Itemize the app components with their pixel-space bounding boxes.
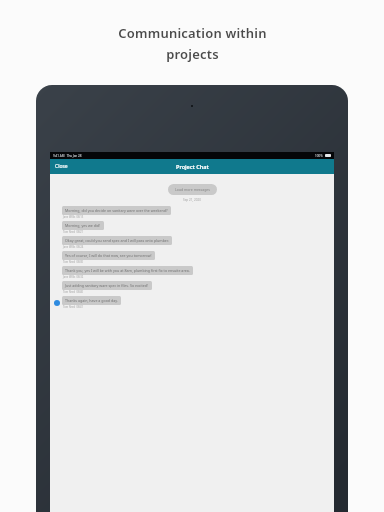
staticText: Okay great, could you send spec and I wi… [65,238,169,243]
staticText: Tom Reed 08:41 [63,305,84,309]
button[interactable]: Thank you, yes I will be with you at 8am… [50,265,334,280]
staticText: Morning, yes we did! [65,223,101,228]
staticText: Load more messages [175,187,210,192]
button[interactable]: Close [50,161,73,172]
button[interactable]: Morning, yes we did! [50,220,334,235]
staticText: 100% [315,154,323,158]
staticText: Jane Willis 08:15 [63,215,84,219]
staticText: Project Chat [176,163,209,170]
button[interactable]: Yes of course, I will do that now, see y… [50,250,334,265]
staticText: Sep 21, 2020 [183,198,201,202]
staticText: 9:41 AM Thu Jan 28 [53,154,82,158]
button[interactable]: Sender avatar [50,295,334,310]
staticText: Tom Reed 08:21 [63,230,84,234]
staticText: Communication within [118,24,267,42]
staticText: projects [166,45,219,63]
other: Sender avatar [54,300,60,306]
staticText: Just adding sanitary ware spec in files.… [65,283,149,288]
button[interactable]: Okay great, could you send spec and I wi… [50,235,334,250]
staticText: Close [55,163,68,170]
staticText: Tom Reed 08:40 [63,290,84,294]
staticText: Jane Willis 08:24 [63,245,84,249]
button[interactable]: Just adding sanitary ware spec in files.… [50,280,334,295]
staticText: Morning, did you decide on sanitary ware… [65,208,168,213]
staticText: Yes of course, I will do that now, see y… [65,253,152,258]
staticText: Tom Reed 08:30 [63,260,84,264]
button[interactable]: Load more messages [168,184,217,195]
staticText: Thank you, yes I will be with you at 8am… [65,268,190,273]
staticText: Thanks again, have a good day. [65,298,118,303]
button[interactable]: Morning, did you decide on sanitary ware… [50,205,334,220]
staticText: Jane Willis 08:32 [63,275,84,279]
